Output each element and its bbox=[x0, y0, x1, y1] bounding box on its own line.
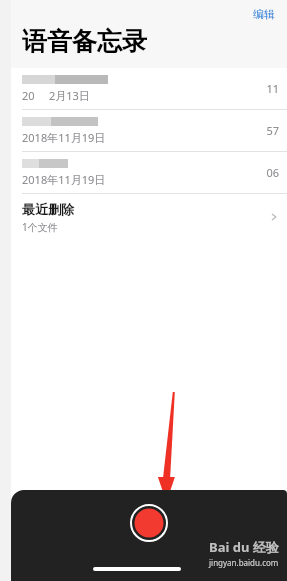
button[interactable]: 最近删除 bbox=[11, 194, 287, 240]
button[interactable]: 20 2月13日 bbox=[11, 68, 287, 109]
staticText: 2018年11月19日 bbox=[22, 130, 106, 145]
button[interactable]: 2018年11月19日 bbox=[11, 110, 287, 151]
staticText: 2018年11月19日 bbox=[22, 172, 106, 187]
staticText: 语音备忘录 bbox=[22, 26, 147, 57]
staticText: 编辑 bbox=[253, 7, 275, 21]
staticText: 最近删除 bbox=[22, 201, 74, 217]
staticText: jingyan.baidu.com bbox=[209, 557, 279, 568]
staticText: Bai du 经验 bbox=[209, 538, 279, 556]
staticText: 57 bbox=[266, 123, 279, 138]
staticText: 1个文件 bbox=[22, 220, 58, 234]
staticText: 20 2月13日 bbox=[22, 88, 90, 103]
button[interactable]: 2018年11月19日 bbox=[11, 152, 287, 193]
staticText: 11 bbox=[266, 81, 279, 96]
button[interactable]: Record bbox=[130, 504, 168, 542]
button[interactable]: 编辑 bbox=[247, 3, 281, 25]
staticText: 06 bbox=[266, 165, 279, 180]
